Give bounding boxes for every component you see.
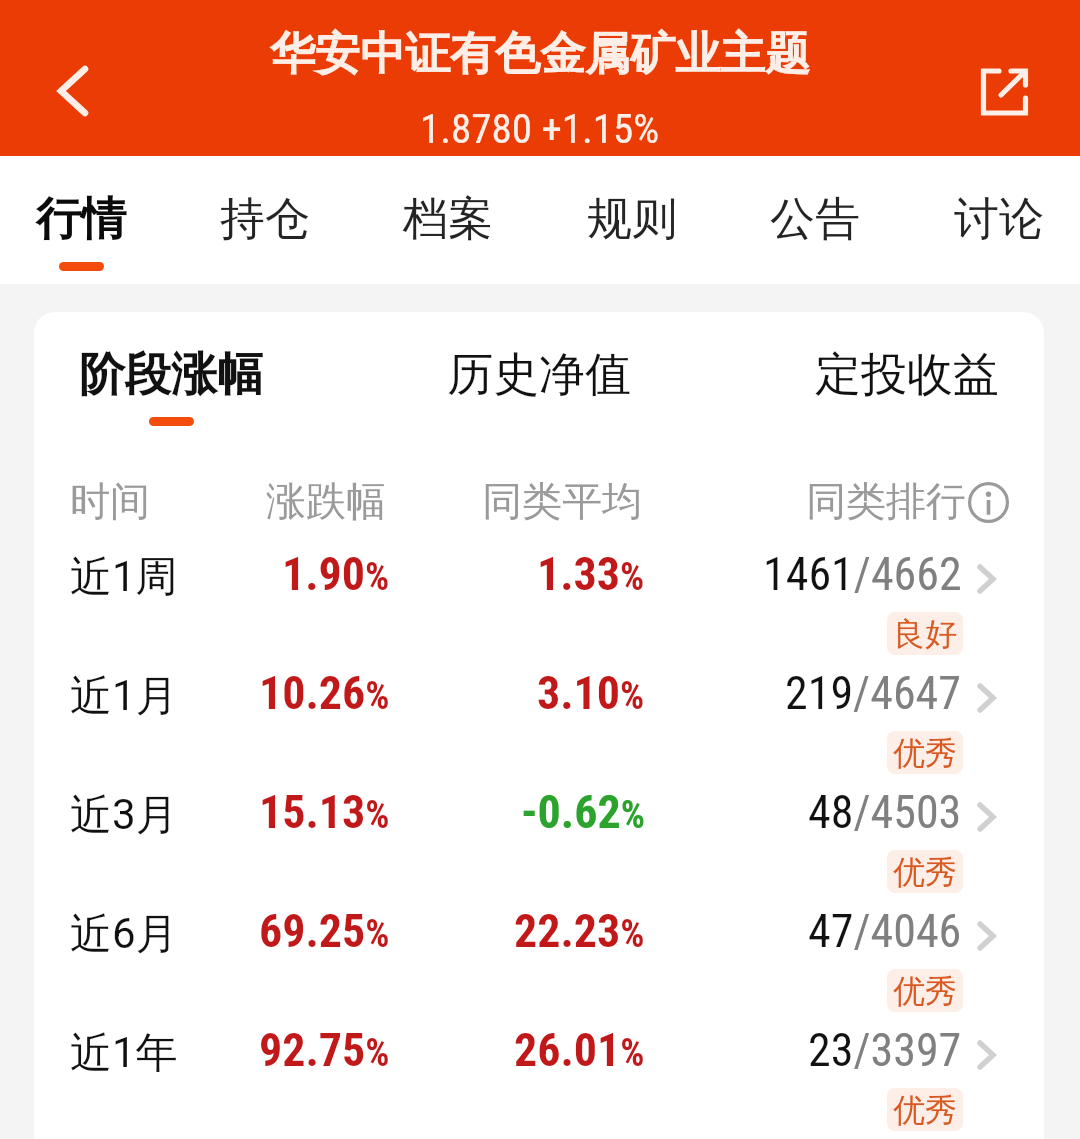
staticText: -0.62% [521, 785, 645, 839]
staticText: 22.23% [514, 904, 645, 958]
staticText: 1461/4662 [763, 547, 962, 601]
staticText: 讨论 [954, 191, 1044, 248]
staticText: 行情 [36, 191, 126, 248]
staticText: 92.75% [259, 1023, 390, 1077]
staticText: 持仓 [220, 191, 310, 248]
staticText: 优秀 [893, 1090, 957, 1130]
staticText: 良好 [893, 614, 957, 654]
staticText: 219/4647 [785, 666, 962, 720]
staticText: 阶段涨幅 [79, 346, 263, 404]
staticText: 1.8780 +1.15% [420, 105, 660, 153]
staticText: 涨跌幅 [266, 476, 386, 526]
button[interactable]: 行情 [36, 156, 126, 284]
button[interactable]: 历史净值 [435, 338, 643, 412]
button[interactable]: 讨论 [954, 156, 1044, 284]
staticText: 优秀 [893, 733, 957, 773]
staticText: 近6月 [70, 908, 178, 961]
staticText: 近3月 [70, 789, 178, 842]
staticText: 48/4503 [808, 785, 962, 839]
staticText: 26.01% [514, 1023, 645, 1077]
button[interactable]: 近6月 [34, 893, 1044, 1012]
staticText: 近1月 [70, 670, 178, 723]
staticText: 10.26% [259, 666, 390, 720]
button[interactable]: 公告 [770, 156, 860, 284]
button[interactable]: 近1年 [34, 1012, 1044, 1131]
staticText: 同类排行 [806, 476, 966, 526]
staticText: 优秀 [893, 971, 957, 1011]
button[interactable]: 定投收益 [803, 338, 1011, 412]
button[interactable]: 近1周 [34, 536, 1044, 655]
button[interactable]: Back [14, 44, 110, 140]
staticText: 历史净值 [447, 346, 631, 404]
staticText: 时间 [70, 476, 150, 526]
staticText: 近1周 [70, 551, 178, 604]
button[interactable]: 近3月 [34, 774, 1044, 893]
staticText: 23/3397 [808, 1023, 962, 1077]
staticText: 公告 [770, 191, 860, 248]
staticText: 规则 [587, 191, 677, 248]
staticText: 1.90% [282, 547, 390, 601]
staticText: 档案 [403, 191, 493, 248]
staticText: 同类平均 [482, 476, 642, 526]
button[interactable]: Share [956, 41, 1052, 137]
staticText: 优秀 [893, 852, 957, 892]
staticText: 华安中证有色金属矿业主题 [270, 26, 810, 83]
button[interactable]: 规则 [587, 156, 677, 284]
staticText: 1.33% [537, 547, 645, 601]
staticText: 近1年 [70, 1027, 178, 1080]
staticText: 定投收益 [815, 346, 999, 404]
staticText: 69.25% [259, 904, 390, 958]
button[interactable]: 档案 [403, 156, 493, 284]
staticText: 47/4046 [808, 904, 962, 958]
staticText: 3.10% [537, 666, 645, 720]
button[interactable]: 持仓 [220, 156, 310, 284]
button[interactable]: 近1月 [34, 655, 1044, 774]
staticText: 15.13% [259, 785, 390, 839]
button[interactable]: 阶段涨幅 [67, 338, 275, 412]
